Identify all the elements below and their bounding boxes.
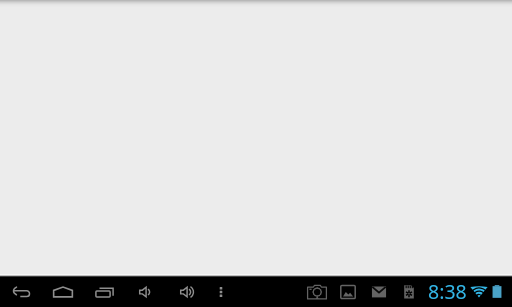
button[interactable]: Camera [304,279,330,305]
button[interactable]: Screenshot [335,279,361,305]
button[interactable]: Wi-Fi [466,279,492,305]
button[interactable]: Email [366,279,392,305]
button[interactable]: More options [208,279,234,305]
button[interactable]: Home [50,279,76,305]
button[interactable]: Back [9,279,35,305]
button[interactable]: Volume up [173,279,199,305]
staticText: 8:38 [428,278,467,305]
button[interactable]: Volume down [132,279,158,305]
button[interactable]: USB connected [396,279,422,305]
button[interactable]: 8:38 [428,278,467,305]
button[interactable]: Recent apps [90,280,116,306]
button[interactable]: Battery [484,279,510,305]
